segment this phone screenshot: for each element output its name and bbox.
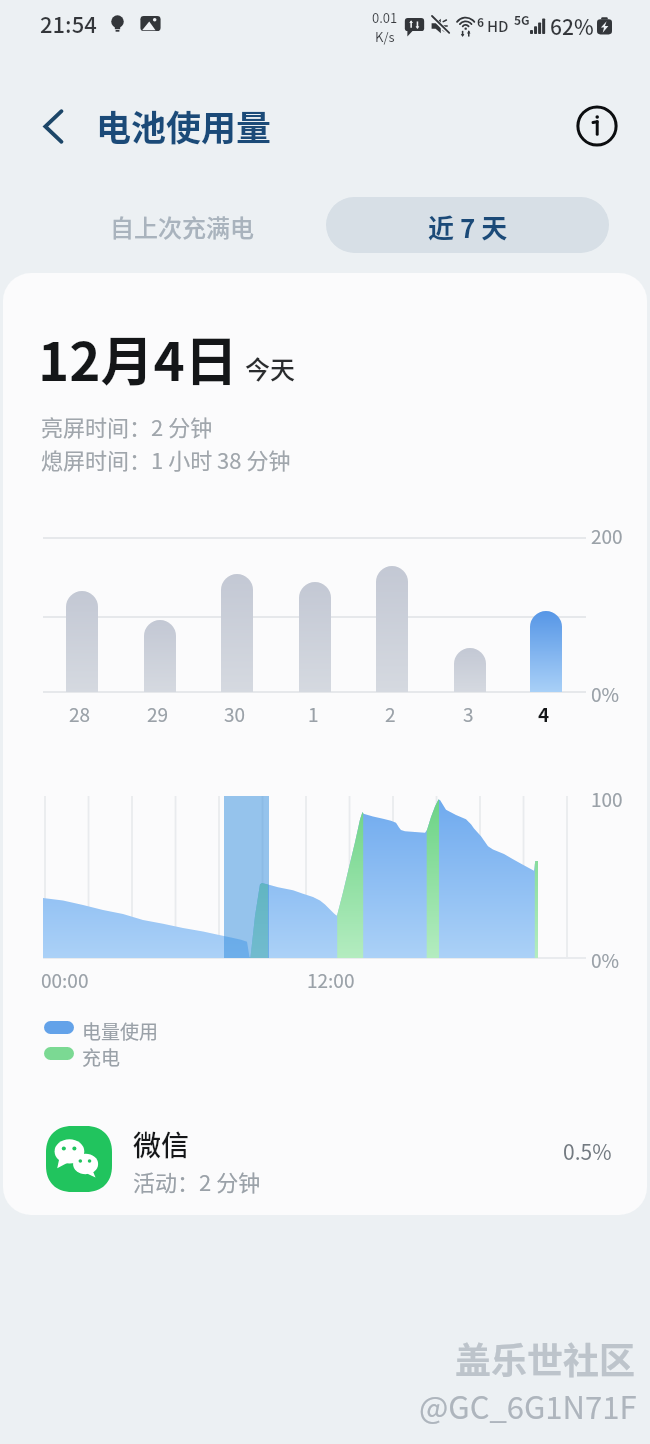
staticText: 12月4日 (38, 320, 238, 397)
staticText: 100 (591, 785, 623, 813)
staticText: 0% (591, 946, 620, 974)
button[interactable]: 微信 (3, 1093, 647, 1203)
staticText: 12:00 (307, 966, 355, 994)
button[interactable]: 自上次充满电 (48, 197, 316, 253)
staticText: 3 (463, 700, 474, 725)
staticText: 29 (147, 700, 169, 725)
staticText: 电池使用量 (96, 100, 272, 151)
staticText: 亮屏时间：2 分钟 (41, 410, 213, 442)
staticText: 00:00 (41, 966, 89, 994)
staticText: 2 (385, 700, 396, 725)
staticText: 6 (477, 13, 485, 30)
staticText: 62% (550, 11, 594, 41)
staticText: 盖乐世社区 (455, 1332, 636, 1384)
staticText: 今天 (245, 350, 296, 386)
staticText: 0.01 (372, 8, 398, 27)
button[interactable]: Back (30, 104, 75, 149)
button[interactable]: 近 7 天 (326, 197, 609, 253)
staticText: @GC_6G1N71F (419, 1383, 637, 1428)
staticText: K/s (375, 27, 395, 46)
staticText: 近 7 天 (428, 208, 508, 246)
staticText: HD (487, 15, 509, 37)
staticText: 活动：2 分钟 (133, 1165, 261, 1197)
staticText: 21:54 (40, 7, 97, 39)
staticText: 电量使用 (82, 1017, 159, 1045)
staticText: 5G (514, 11, 530, 28)
staticText: 30 (224, 700, 246, 725)
button[interactable]: Information (574, 103, 620, 149)
staticText: 4 (538, 700, 550, 725)
staticText: 1 (308, 700, 319, 725)
staticText: 自上次充满电 (110, 209, 254, 244)
staticText: 微信 (133, 1124, 190, 1165)
staticText: 充电 (82, 1043, 121, 1071)
staticText: 0.5% (563, 1136, 612, 1166)
staticText: 熄屏时间：1 小时 38 分钟 (41, 443, 291, 475)
staticText: 0% (591, 680, 620, 708)
staticText: 28 (69, 700, 91, 725)
staticText: 200 (591, 522, 623, 550)
